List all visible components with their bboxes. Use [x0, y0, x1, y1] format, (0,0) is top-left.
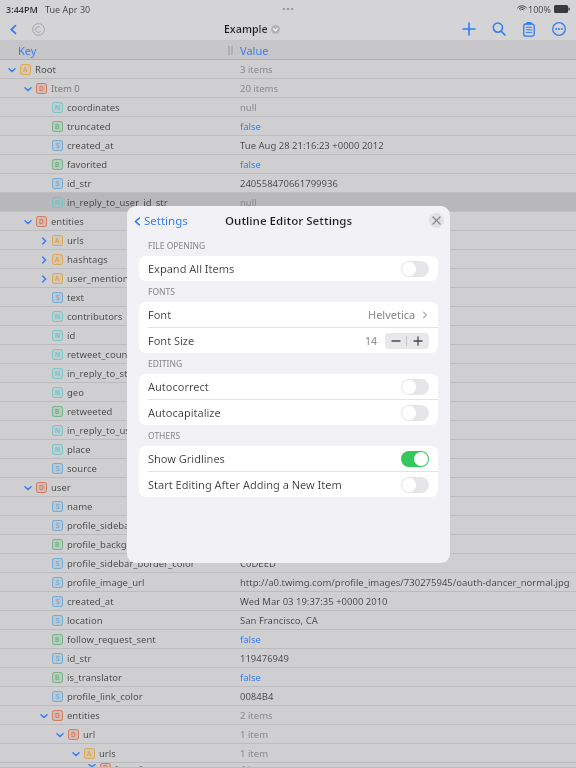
button[interactable]: B [0, 630, 576, 649]
button[interactable]: Show Gridlines [139, 446, 438, 471]
staticText: 2 items [240, 709, 273, 722]
button[interactable]: D [0, 763, 576, 768]
button[interactable]: Back [0, 18, 26, 40]
button[interactable]: Autocorrect [139, 374, 438, 399]
button[interactable]: S [0, 174, 576, 193]
staticText: 1 item [240, 728, 269, 741]
staticText: 0 items [240, 272, 273, 285]
button[interactable]: Toggle [401, 477, 429, 493]
button[interactable]: More [544, 18, 574, 40]
button[interactable]: Start Editing After Adding a New Item [139, 472, 438, 497]
button[interactable]: D [0, 79, 576, 98]
button[interactable]: Settings [127, 210, 192, 232]
button[interactable]: Font Size [139, 328, 438, 353]
button[interactable]: S [0, 649, 576, 668]
button[interactable]: B [0, 117, 576, 136]
button[interactable]: N [0, 440, 576, 459]
button[interactable]: A [0, 60, 576, 79]
staticText: A [55, 274, 60, 283]
staticText: created_at [67, 595, 114, 608]
button[interactable]: S [0, 687, 576, 706]
button[interactable]: Example [220, 20, 284, 38]
staticText: N [55, 445, 61, 454]
button[interactable]: A [0, 744, 576, 763]
button[interactable]: N [0, 364, 576, 383]
button[interactable]: S [0, 516, 576, 535]
staticText: 0 items [240, 253, 273, 266]
button[interactable]: S [0, 459, 576, 478]
button[interactable]: D [0, 212, 576, 231]
staticText: user_mentions [67, 272, 134, 285]
staticText: D [71, 730, 76, 739]
button[interactable]: Expand All Items [139, 256, 438, 281]
button[interactable]: S [0, 288, 576, 307]
button[interactable]: Toggle [401, 379, 429, 395]
staticText: B [55, 673, 60, 682]
button[interactable]: S [0, 497, 576, 516]
staticText: OTHERS [148, 430, 181, 442]
staticText: in_reply_to_user_id [67, 424, 152, 437]
button[interactable]: N [0, 326, 576, 345]
button[interactable]: N [0, 421, 576, 440]
button[interactable]: S [0, 592, 576, 611]
button[interactable]: Toggle [401, 261, 429, 277]
staticText: Outline Editor Settings [225, 213, 353, 229]
button[interactable]: N [0, 383, 576, 402]
button[interactable]: D [0, 478, 576, 497]
staticText: S [56, 521, 60, 530]
button[interactable]: Close [429, 213, 444, 228]
button[interactable]: Add [454, 18, 484, 40]
button[interactable]: N [0, 193, 576, 212]
button[interactable]: Clipboard [514, 18, 544, 40]
staticText: Tue Aug 28 21:16:23 +0000 2012 [240, 139, 384, 152]
button[interactable]: Search [484, 18, 514, 40]
staticText: D [39, 84, 44, 93]
button[interactable]: Decrease font size [385, 333, 406, 349]
staticText: Wed Mar 03 19:37:35 +0000 2010 [240, 595, 388, 608]
button[interactable]: D [0, 706, 576, 725]
staticText: Example [224, 22, 268, 36]
button[interactable]: Toggle [401, 451, 429, 467]
staticText: S [56, 179, 60, 188]
staticText: C0DEED [240, 557, 276, 570]
staticText: Start Editing After Adding a New Item [148, 477, 342, 492]
button[interactable]: S [0, 573, 576, 592]
button[interactable]: N [0, 307, 576, 326]
button[interactable]: N [0, 345, 576, 364]
button[interactable]: Autocapitalize [139, 400, 438, 425]
staticText: urls [99, 747, 116, 760]
staticText: http://a0.twimg.com/profile_images/73027… [240, 576, 570, 589]
staticText: 1 item [240, 747, 269, 760]
staticText: id [67, 329, 76, 342]
button[interactable]: Font [139, 302, 438, 327]
button[interactable]: N [0, 98, 576, 117]
button[interactable]: A [0, 269, 576, 288]
button[interactable]: Undo [26, 18, 50, 40]
staticText: Tue Apr 30 [45, 3, 91, 15]
button[interactable]: B [0, 535, 576, 554]
button[interactable]: S [0, 136, 576, 155]
staticText: is_translator [67, 671, 123, 684]
button[interactable]: B [0, 402, 576, 421]
button[interactable]: B [0, 668, 576, 687]
staticText: Autocapitalize [148, 405, 221, 420]
staticText: place [67, 443, 91, 456]
staticText: Show Gridlines [148, 451, 225, 466]
staticText: S [56, 464, 60, 473]
button[interactable]: Toggle [401, 405, 429, 421]
staticText: in_reply_to_user_id_str [67, 196, 168, 209]
staticText: S [56, 578, 60, 587]
button[interactable]: A [0, 250, 576, 269]
staticText: A [55, 236, 60, 245]
button[interactable]: A [0, 231, 576, 250]
staticText: Root [35, 63, 56, 76]
button[interactable]: S [0, 611, 576, 630]
button[interactable]: Increase font size [407, 333, 429, 349]
button[interactable]: S [0, 554, 576, 573]
button[interactable]: B [0, 155, 576, 174]
staticText: B [55, 407, 60, 416]
button[interactable]: D [0, 725, 576, 744]
